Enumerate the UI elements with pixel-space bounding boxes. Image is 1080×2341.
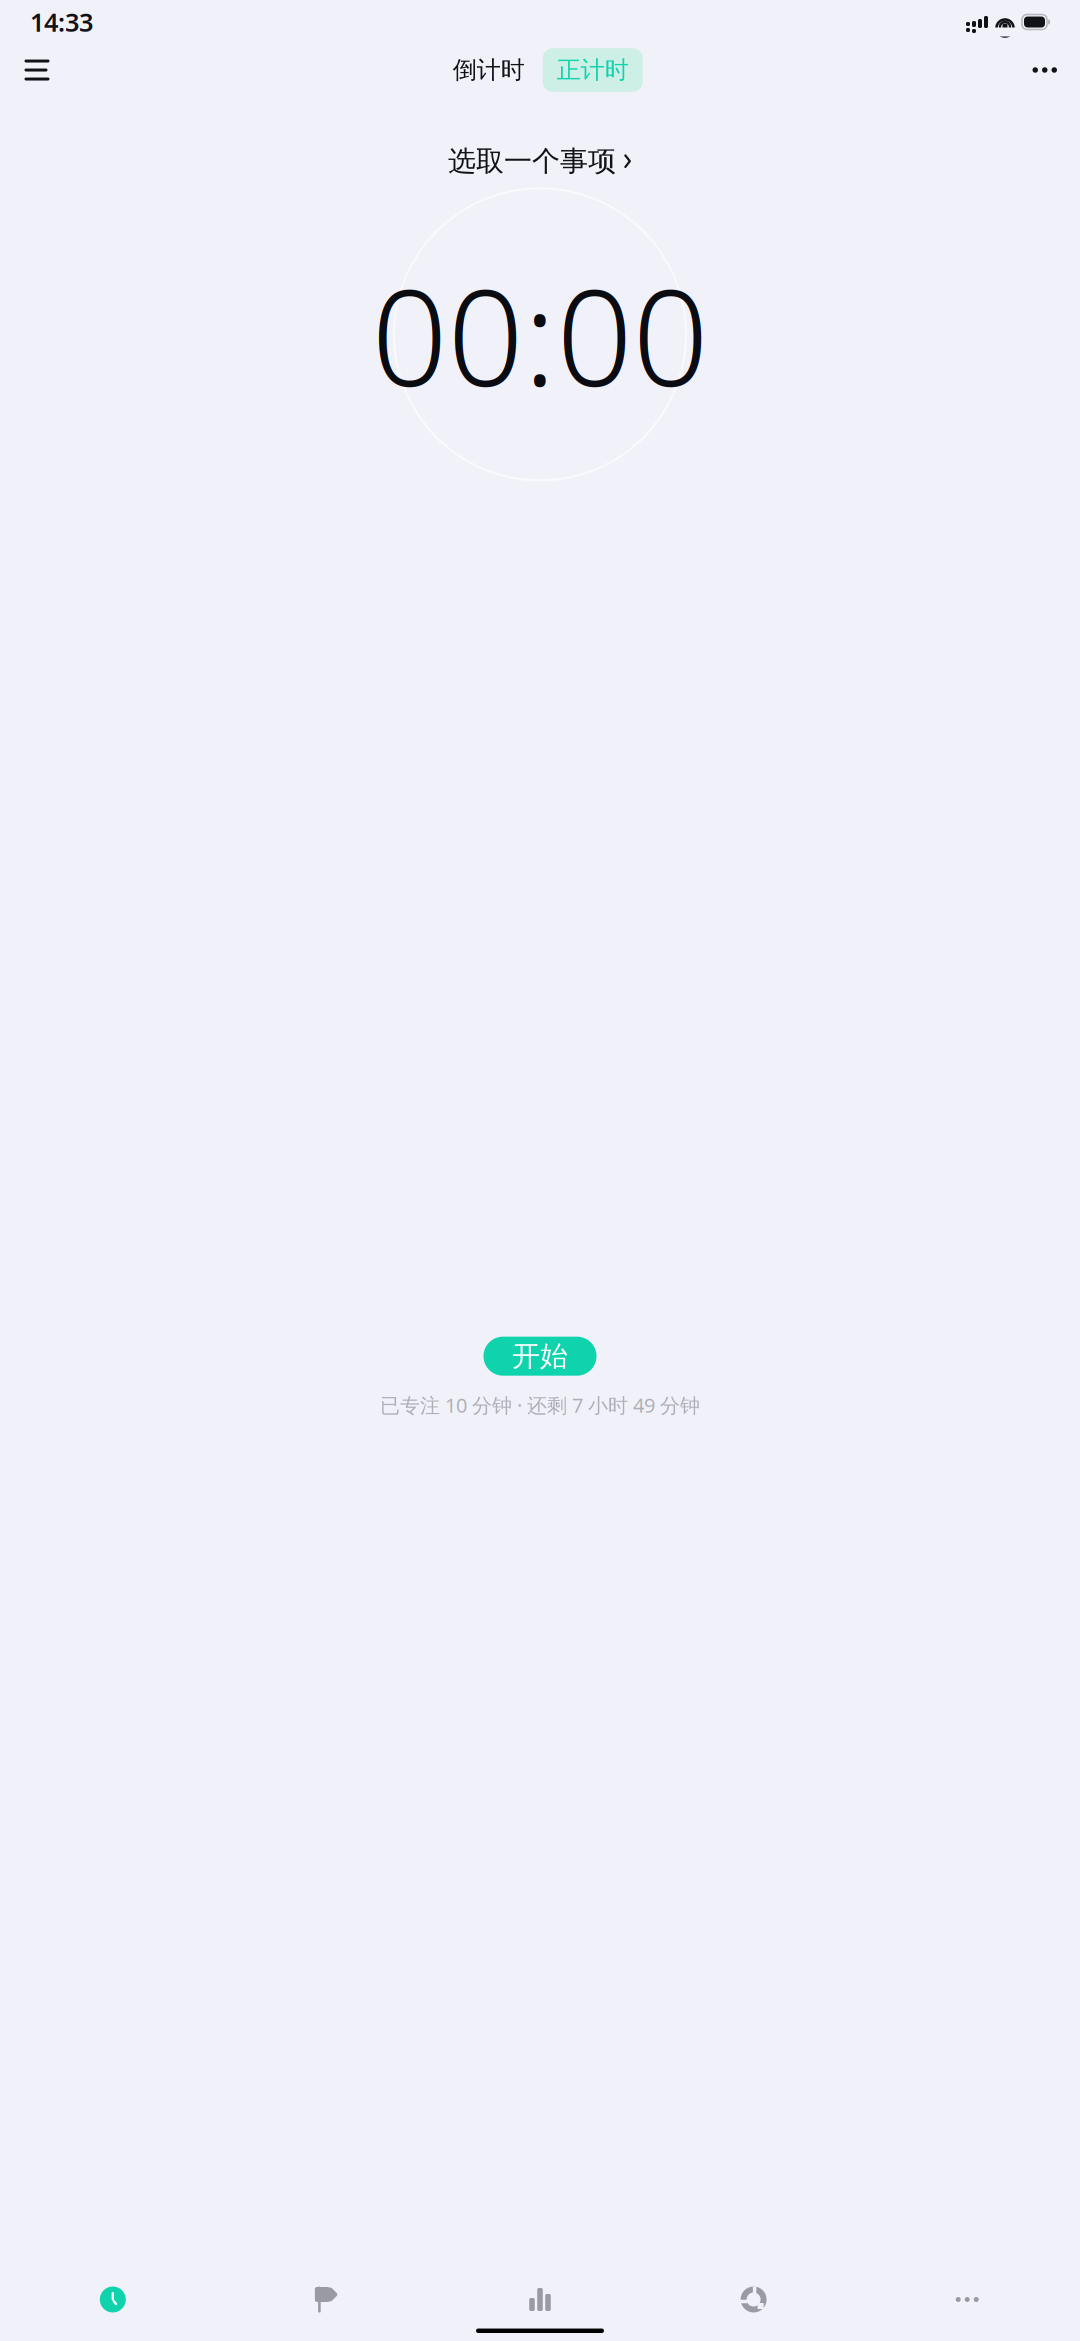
button[interactable]: Statistics [433,2274,647,2324]
staticText: 已专注 10 分钟 · 还剩 7 小时 49 分钟 [380,1392,700,1418]
staticText: 14:33 [30,5,93,39]
staticText: 正计时 [557,55,629,85]
button[interactable]: Goals [220,2274,433,2324]
button[interactable]: Menu [15,48,59,92]
button[interactable]: 开始 [483,1337,596,1376]
button[interactable]: 倒计时 [441,48,537,92]
staticText: 倒计时 [453,55,525,85]
staticText: 00:00 [371,246,708,423]
button[interactable]: Timer [6,2274,220,2324]
button[interactable]: More options [1024,51,1065,89]
button[interactable]: Reports [647,2274,860,2324]
button[interactable]: 选取一个事项 [438,138,642,184]
staticText: 选取一个事项 [448,144,616,178]
staticText: 开始 [512,1339,568,1373]
button[interactable]: 正计时 [543,48,643,92]
button[interactable]: More [860,2287,1074,2312]
